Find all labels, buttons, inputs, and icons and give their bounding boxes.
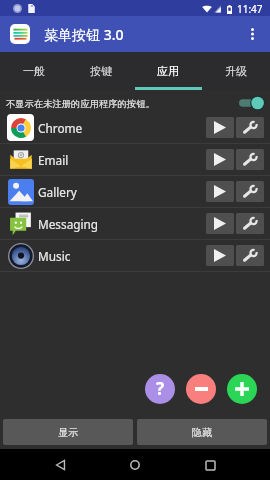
button[interactable]: 隐藏 bbox=[137, 419, 267, 445]
button[interactable]: Play bbox=[206, 117, 234, 138]
staticText: 不显示在未注册的应用程序的按钮。 bbox=[6, 98, 155, 110]
button[interactable]: Recents bbox=[197, 452, 223, 478]
staticText: Gallery bbox=[38, 184, 77, 200]
button[interactable]: More options bbox=[237, 19, 267, 49]
button[interactable]: Add bbox=[227, 374, 257, 404]
button[interactable]: Play bbox=[206, 245, 234, 266]
button[interactable]: Play bbox=[206, 213, 234, 234]
button[interactable]: Remove bbox=[186, 374, 216, 404]
staticText: 11:47 bbox=[237, 2, 263, 16]
staticText: 应用 bbox=[157, 64, 179, 78]
button[interactable]: 显示 bbox=[3, 419, 133, 445]
button[interactable]: Settings bbox=[236, 245, 264, 266]
staticText: Chrome bbox=[38, 120, 83, 136]
staticText: Messaging bbox=[38, 216, 99, 232]
button[interactable]: Music bbox=[0, 240, 270, 271]
button[interactable]: 按键 bbox=[67, 52, 134, 90]
button[interactable]: Settings bbox=[236, 117, 264, 138]
button[interactable]: Email bbox=[0, 144, 270, 175]
button[interactable]: Settings bbox=[236, 213, 264, 234]
staticText: Music bbox=[38, 248, 71, 264]
button[interactable]: Gallery bbox=[0, 176, 270, 207]
button[interactable]: Help bbox=[145, 374, 175, 404]
staticText: 按键 bbox=[90, 64, 112, 78]
staticText: Email bbox=[38, 152, 69, 168]
button[interactable]: Settings bbox=[236, 181, 264, 202]
button[interactable]: Home bbox=[122, 452, 148, 478]
staticText: 菜单按钮 3.0 bbox=[44, 25, 124, 44]
button[interactable]: 升级 bbox=[202, 52, 270, 90]
button[interactable]: Toggle bbox=[239, 94, 265, 112]
button[interactable]: Play bbox=[206, 149, 234, 170]
button[interactable]: 应用 bbox=[134, 52, 202, 90]
staticText: 升级 bbox=[225, 64, 247, 78]
button[interactable]: 一般 bbox=[0, 52, 67, 90]
button[interactable]: Chrome bbox=[0, 112, 270, 143]
button[interactable]: Messaging bbox=[0, 208, 270, 239]
staticText: 显示 bbox=[58, 426, 78, 439]
staticText: 一般 bbox=[23, 64, 45, 78]
button[interactable]: Settings bbox=[236, 149, 264, 170]
staticText: ? bbox=[156, 377, 165, 400]
button[interactable]: Back bbox=[47, 452, 73, 478]
button[interactable]: Play bbox=[206, 181, 234, 202]
staticText: 隐藏 bbox=[192, 426, 212, 439]
